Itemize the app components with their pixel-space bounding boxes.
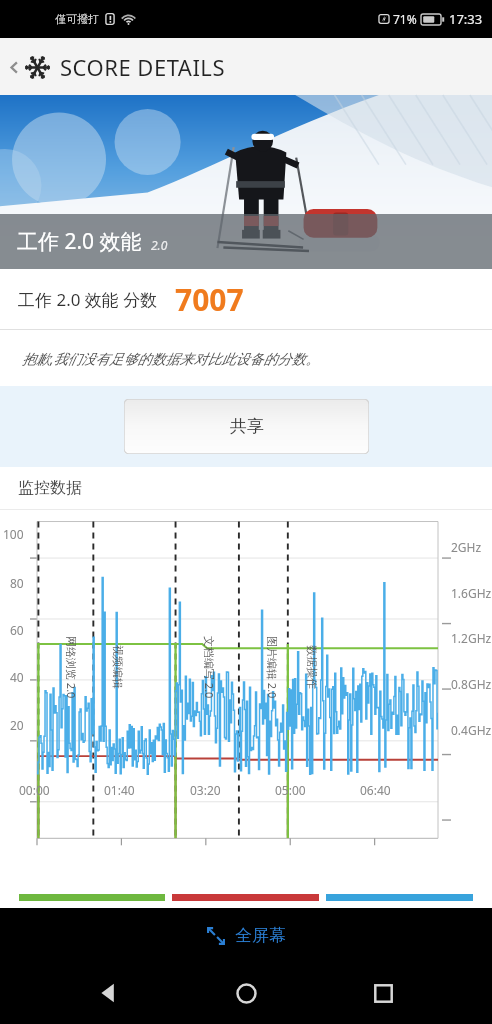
staticText: 全屏幕	[235, 925, 286, 946]
button[interactable]: Back	[81, 965, 137, 1021]
staticText: 僅可撥打	[55, 12, 99, 26]
staticText: 监控数据	[18, 478, 82, 498]
button[interactable]: 共享	[124, 399, 369, 454]
staticText: 文档编写 2.0	[202, 636, 217, 699]
staticText: 工作 2.0 效能 分数	[18, 288, 158, 311]
staticText: 17:33	[449, 10, 483, 28]
button[interactable]: Home	[218, 965, 274, 1021]
staticText: 0.4GHz	[451, 722, 492, 738]
staticText: 0.8GHz	[451, 676, 492, 692]
staticText: 数据操作	[305, 645, 319, 689]
staticText: 00:00	[19, 782, 50, 798]
staticText: 100	[3, 526, 24, 542]
staticText: 60	[10, 622, 24, 638]
staticText: 40	[10, 669, 24, 685]
button[interactable]: Back	[0, 38, 492, 95]
button[interactable]: 全屏幕	[0, 908, 492, 962]
staticText: SCORE DETAILS	[60, 52, 225, 82]
staticText: 1.2GHz	[451, 630, 492, 646]
staticText: 图片编辑 2.0	[265, 636, 280, 699]
staticText: 网络浏览 2.0	[64, 636, 79, 699]
staticText: 视频编辑	[111, 645, 125, 689]
staticText: 抱歉,我们没有足够的数据来对比此设备的分数。	[22, 349, 320, 368]
staticText: 05:00	[275, 782, 306, 798]
staticText: 80	[10, 575, 24, 591]
staticText: 1.6GHz	[451, 585, 492, 601]
staticText: 06:40	[360, 782, 391, 798]
staticText: 01:40	[104, 782, 135, 798]
staticText: 03:20	[190, 782, 221, 798]
button[interactable]: Recents	[355, 965, 411, 1021]
staticText: 7007	[175, 279, 244, 320]
staticText: 2.0	[151, 237, 168, 253]
staticText: 共享	[230, 416, 264, 437]
staticText: 2GHz	[451, 539, 482, 555]
staticText: 20	[10, 717, 24, 733]
staticText: 工作 2.0 效能	[17, 227, 142, 256]
staticText: 71%	[393, 11, 417, 27]
